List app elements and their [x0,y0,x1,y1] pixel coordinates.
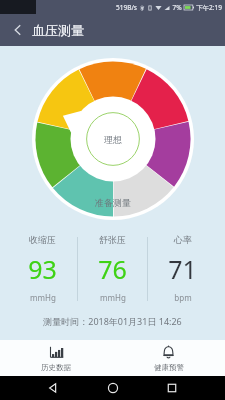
other: Health alerts [161,345,176,360]
staticText: 测量时间：2018年01月31日 14:26 [43,315,182,327]
staticText: 心率 [174,234,192,245]
button[interactable]: 心率 [148,234,217,303]
staticText: mmHg [30,292,56,303]
button[interactable]: 收缩压 [8,234,77,303]
staticText: 准备测量 [95,197,131,208]
button[interactable]: Back [4,16,32,44]
staticText: 健康预警 [154,363,184,372]
button[interactable]: Health alerts [112,340,225,376]
other: History data [49,345,64,360]
staticText: 历史数据 [41,363,71,372]
button[interactable]: 舒张压 [78,234,147,303]
staticText: 7% [172,3,182,12]
button[interactable]: History data [0,340,112,376]
staticText: 理想 [104,134,122,145]
staticText: 收缩压 [29,234,56,245]
staticText: 93 [28,252,57,286]
staticText: 血压测量 [32,22,84,38]
staticText: 76 [98,252,127,286]
staticText: 71 [168,252,197,286]
staticText: mmHg [100,292,126,303]
staticText: 519B/s [116,3,137,12]
staticText: 下午2:19 [196,3,222,12]
staticText: 舒张压 [99,234,126,245]
staticText: bpm [174,292,192,303]
